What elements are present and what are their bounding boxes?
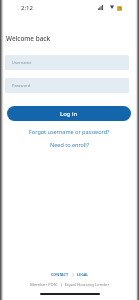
button[interactable]: Need to enroll? — [0, 139, 139, 149]
staticText: | — [69, 272, 77, 277]
staticText: Forgot username or password? — [29, 128, 110, 135]
staticText: Username — [12, 60, 32, 65]
button[interactable]: Forgot username or password? — [0, 126, 139, 136]
button[interactable]: LEGAL — [77, 272, 89, 277]
button[interactable]: Username — [5, 55, 129, 70]
button[interactable]: Log in — [7, 106, 131, 121]
button[interactable]: Password — [5, 78, 129, 93]
staticText: Password — [12, 83, 31, 88]
button[interactable]: CONTACT — [51, 272, 69, 277]
staticText: 75 — [118, 7, 122, 11]
staticText: Welcome back — [6, 34, 51, 43]
staticText: Log in — [60, 110, 78, 118]
staticText: Member FDIC | Equal Housing Lender — [30, 281, 110, 287]
staticText: Need to enroll? — [50, 141, 90, 148]
staticText: 2:12 — [21, 4, 33, 12]
